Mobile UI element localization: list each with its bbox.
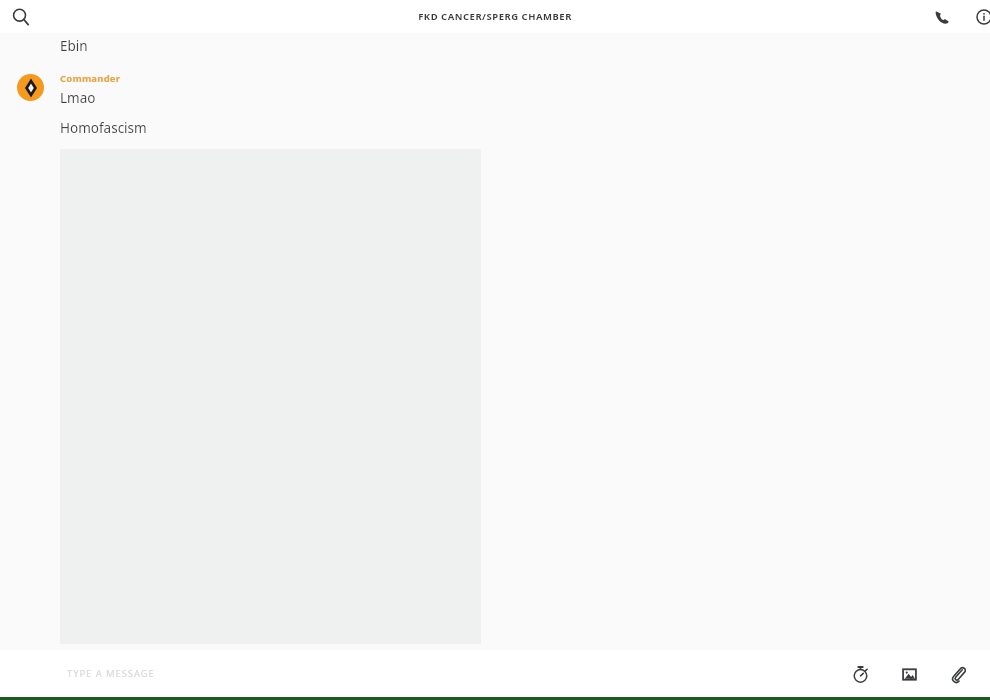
staticText: Lmao — [60, 89, 96, 107]
staticText: Commander — [60, 72, 121, 85]
button[interactable]: Attach file — [940, 656, 976, 692]
staticText: FKD CANCER/SPERG CHAMBER — [418, 10, 572, 23]
staticText: TYPE A MESSAGE — [67, 667, 155, 680]
button[interactable]: Call — [926, 1, 958, 33]
button[interactable]: Avatar — [17, 74, 44, 101]
button[interactable]: Timer — [842, 656, 878, 692]
button[interactable]: Search — [6, 2, 36, 32]
button[interactable]: Photo — [891, 656, 927, 692]
button[interactable]: Info — [968, 1, 990, 33]
staticText: Ebin — [60, 37, 88, 55]
staticText: Homofascism — [60, 119, 147, 137]
